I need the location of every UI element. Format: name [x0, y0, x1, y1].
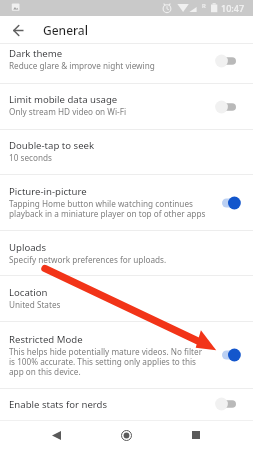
staticText: Dark theme: [9, 47, 63, 60]
button[interactable]: Limit mobile data usage: [0, 84, 253, 129]
staticText: Picture-in-picture: [9, 185, 87, 198]
button[interactable]: Uploads: [0, 231, 253, 275]
staticText: This helps hide potentially mature video…: [9, 346, 203, 377]
button[interactable]: Picture-in-picture: [0, 175, 253, 230]
staticText: Tapping Home button while watching conti…: [9, 198, 206, 219]
staticText: United States: [9, 299, 61, 310]
staticText: Double-tap to seek: [9, 139, 95, 152]
staticText: Uploads: [9, 241, 47, 254]
button[interactable]: Location: [0, 276, 253, 321]
staticText: R: [202, 2, 206, 10]
button[interactable]: Enable stats for nerds: [0, 389, 253, 418]
staticText: Enable stats for nerds: [9, 398, 108, 411]
staticText: Specify network preferences for uploads.: [9, 254, 167, 265]
button[interactable]: Recent apps: [178, 422, 214, 448]
staticText: 10 seconds: [9, 152, 52, 163]
staticText: Reduce glare & improve night viewing: [9, 60, 155, 71]
button[interactable]: Back: [38, 422, 74, 448]
staticText: 10:47: [221, 2, 245, 14]
button[interactable]: Dark theme: [0, 44, 253, 83]
button[interactable]: Home: [108, 422, 144, 448]
staticText: Only stream HD video on Wi-Fi: [9, 106, 127, 117]
button[interactable]: Restricted Mode: [0, 322, 253, 388]
staticText: Location: [9, 286, 48, 299]
staticText: General: [43, 22, 88, 38]
button[interactable]: Navigate up: [7, 19, 29, 41]
staticText: Restricted Mode: [9, 333, 83, 346]
staticText: Limit mobile data usage: [9, 93, 118, 106]
button[interactable]: Double-tap to seek: [0, 130, 253, 174]
